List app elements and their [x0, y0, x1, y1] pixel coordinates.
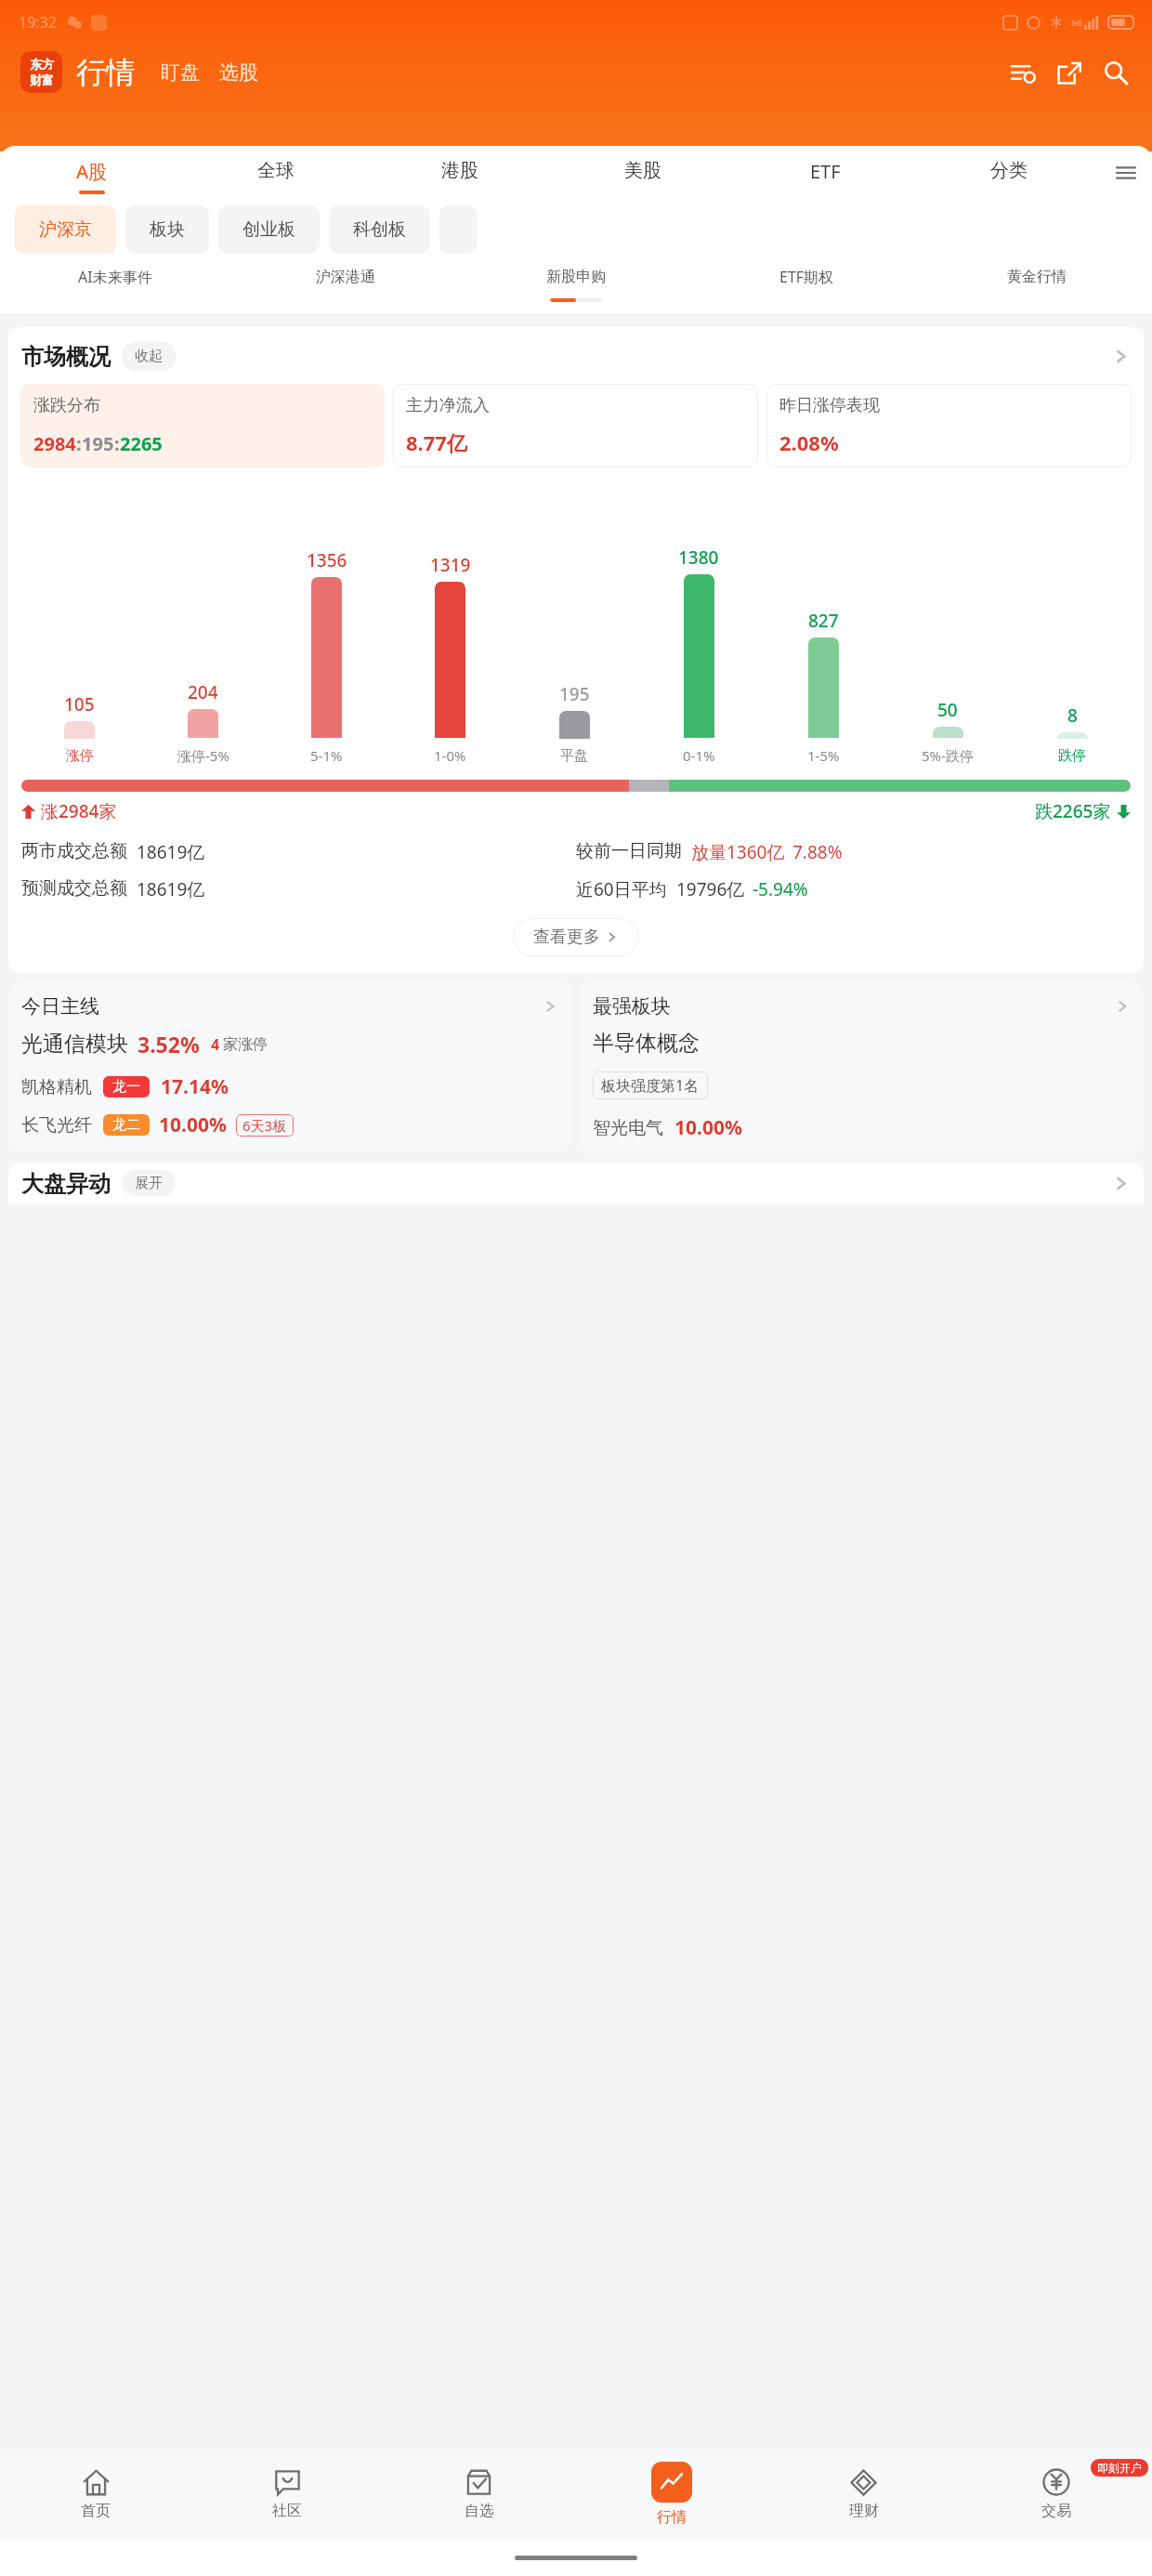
- button[interactable]: 分类: [917, 159, 1100, 189]
- staticText: 19:32: [19, 12, 57, 33]
- button[interactable]: 市场概况: [8, 342, 1144, 371]
- staticText: 0-1%: [683, 746, 715, 765]
- button[interactable]: 首页: [0, 2469, 191, 2520]
- button[interactable]: 昨日涨停表现: [766, 384, 1132, 467]
- staticText: 今日主线: [21, 994, 99, 1019]
- button[interactable]: 涨跌分布: [20, 384, 385, 467]
- button[interactable]: 查看更多: [513, 918, 639, 956]
- button[interactable]: 收起: [122, 342, 176, 371]
- staticText: 8.77亿: [406, 428, 467, 456]
- button[interactable]: Share: [1052, 55, 1087, 90]
- staticText: 理财: [849, 2502, 879, 2520]
- staticText: 财富: [30, 72, 54, 87]
- staticText: 19796亿: [676, 877, 745, 901]
- button[interactable]: Search: [1098, 55, 1133, 90]
- button[interactable]: 科创板: [329, 205, 430, 254]
- button[interactable]: 盯盘: [158, 58, 203, 87]
- staticText: 行情: [76, 54, 136, 91]
- staticText: 1319: [430, 553, 471, 577]
- staticText: 1-5%: [807, 746, 840, 765]
- staticText: 8: [1067, 703, 1078, 728]
- button[interactable]: 自选: [383, 2469, 575, 2520]
- button[interactable]: 理财: [767, 2469, 960, 2520]
- button[interactable]: 黄金行情: [922, 268, 1152, 286]
- staticText: 收起: [135, 348, 163, 365]
- button[interactable]: 最强板块: [580, 981, 1144, 1154]
- staticText: 预测成交总额: [21, 877, 127, 900]
- staticText: 创业板: [242, 218, 295, 241]
- button[interactable]: ETF期权: [691, 267, 922, 287]
- button[interactable]: 行情: [575, 2462, 767, 2527]
- staticText: AI未来事件: [78, 267, 152, 287]
- button[interactable]: AI未来事件: [0, 267, 230, 287]
- staticText: 市场概况: [21, 343, 111, 371]
- staticText: 204: [188, 680, 218, 704]
- staticText: 交易: [1041, 2502, 1071, 2520]
- staticText: 即刻开户: [1097, 2461, 1142, 2475]
- staticText: 50: [937, 698, 958, 722]
- staticText: 5%-跌停: [922, 746, 974, 765]
- button[interactable]: 美股: [551, 159, 734, 189]
- button[interactable]: 大盘异动: [8, 1163, 1144, 1203]
- staticText: 1356: [307, 548, 347, 572]
- staticText: 全球: [257, 159, 295, 182]
- staticText: 平盘: [560, 747, 588, 765]
- staticText: 新股申购: [546, 268, 606, 286]
- button[interactable]: 交易: [960, 2468, 1152, 2520]
- button[interactable]: More tabs: [1100, 159, 1152, 187]
- staticText: 半导体概念: [593, 1030, 700, 1057]
- staticText: 105: [64, 692, 95, 716]
- button[interactable]: Filter: [1005, 55, 1041, 90]
- staticText: 两市成交总额: [21, 840, 127, 862]
- staticText: 5-1%: [310, 746, 343, 765]
- button[interactable]: 全球: [184, 159, 368, 189]
- staticText: 沪深京: [39, 218, 92, 241]
- staticText: 自选: [465, 2502, 494, 2520]
- button[interactable]: 社区: [191, 2469, 383, 2520]
- staticText: 昨日涨停表现: [779, 395, 880, 416]
- staticText: 7.88%: [792, 840, 843, 864]
- staticText: 东方: [30, 57, 54, 72]
- staticText: 4: [211, 1034, 220, 1055]
- button[interactable]: 选股: [216, 58, 261, 87]
- button[interactable]: 主力净流入: [393, 384, 758, 467]
- staticText: 涨停: [66, 747, 94, 765]
- staticText: 较前一日同期: [576, 840, 682, 862]
- staticText: 龙二: [112, 1116, 140, 1134]
- staticText: 最强板块: [593, 994, 671, 1019]
- staticText: 板块强度第1名: [601, 1075, 700, 1096]
- staticText: 5G: [1071, 17, 1082, 28]
- staticText: 3.52%: [137, 1030, 200, 1058]
- staticText: 长飞光纤: [21, 1114, 92, 1137]
- button[interactable]: 创业板: [218, 205, 320, 254]
- button[interactable]: 沪深京: [15, 205, 116, 254]
- staticText: 6天3板: [242, 1116, 287, 1135]
- staticText: 凯格精机: [21, 1076, 92, 1098]
- staticText: 盯盘: [161, 60, 200, 85]
- staticText: 195: [559, 682, 590, 706]
- staticText: ETF期权: [779, 267, 834, 287]
- staticText: 主力净流入: [406, 395, 490, 416]
- staticText: 10.00%: [159, 1111, 227, 1138]
- button[interactable]: 板块: [125, 205, 209, 254]
- button[interactable]: ETF: [734, 159, 917, 191]
- staticText: 美股: [624, 159, 661, 182]
- staticText: 18619亿: [137, 877, 205, 901]
- staticText: 科创板: [353, 218, 406, 241]
- staticText: 分类: [990, 159, 1028, 182]
- staticText: 黄金行情: [1007, 268, 1067, 286]
- button[interactable]: 今日主线: [8, 981, 571, 1151]
- staticText: 涨停-5%: [177, 746, 229, 765]
- button[interactable]: 沪深港通: [230, 268, 461, 286]
- staticText: 17.14%: [161, 1073, 229, 1100]
- staticText: 社区: [272, 2502, 302, 2520]
- staticText: 10.00%: [674, 1114, 742, 1141]
- staticText: 2.08%: [779, 428, 839, 456]
- button[interactable]: 新股申购: [461, 268, 691, 286]
- button[interactable]: A股: [0, 159, 184, 194]
- staticText: 跌停: [1058, 747, 1086, 765]
- staticText: 2265: [120, 431, 163, 456]
- staticText: 放量1360亿: [691, 840, 785, 864]
- button[interactable]: 港股: [368, 159, 551, 189]
- staticText: :: [76, 431, 82, 456]
